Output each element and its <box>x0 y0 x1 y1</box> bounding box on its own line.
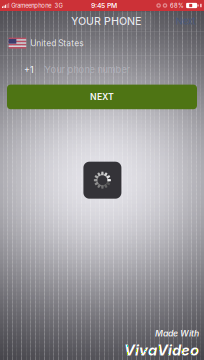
staticText: NEXT <box>90 92 114 102</box>
staticText: VivaVideo <box>124 341 199 359</box>
staticText: Next <box>175 15 195 27</box>
button[interactable]: NEXT <box>7 85 197 109</box>
staticText: Made With <box>155 328 199 339</box>
staticText: Grameenphone <box>11 2 51 9</box>
staticText: YOUR PHONE <box>71 15 141 27</box>
staticText: 68% <box>170 2 184 9</box>
staticText: +1 <box>24 64 34 75</box>
button[interactable]: United States <box>0 32 204 54</box>
staticText: United States <box>30 38 83 48</box>
staticText: Your phone number <box>44 64 129 75</box>
staticText: 9:45 PM <box>91 1 117 10</box>
button[interactable]: +1 <box>0 55 204 84</box>
staticText: 3G <box>54 2 62 9</box>
button[interactable]: Next <box>170 11 200 31</box>
